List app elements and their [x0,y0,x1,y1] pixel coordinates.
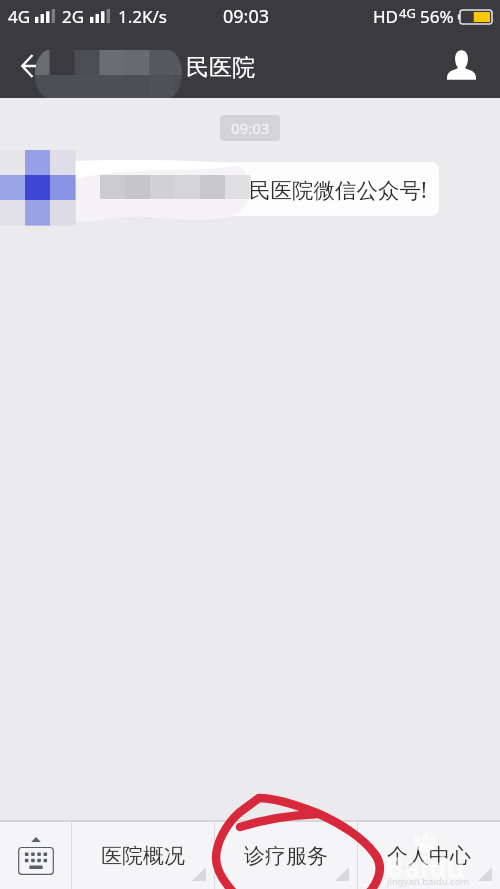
staticText: 56% [420,5,454,28]
button[interactable]: 诊疗服务 [215,822,357,889]
button[interactable]: 个人中心 [358,822,500,889]
staticText: 医院概况 [101,843,185,869]
staticText: 09:03 [223,4,270,29]
staticText: 诊疗服务 [244,843,328,869]
staticText: 民医院 [186,53,255,82]
button[interactable]: Back [0,32,58,98]
staticText: 2G [62,5,85,28]
button[interactable]: Contact profile [442,32,500,98]
staticText: jingyan.baidu.com [387,875,470,888]
staticText: HD [373,5,399,28]
staticText: Baidu [385,848,465,886]
staticText: 个人中心 [387,843,471,869]
staticText: 4G [8,5,31,28]
staticText: 民医院微信公众号! [249,175,427,204]
button[interactable]: Show keyboard [0,822,71,889]
staticText: 1.2K/s [118,5,167,28]
staticText: 09:03 [231,118,270,138]
staticText: 4G [399,4,416,22]
button[interactable]: 医院概况 [72,822,214,889]
